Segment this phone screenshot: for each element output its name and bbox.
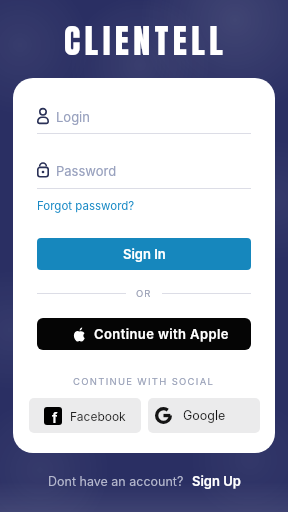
button[interactable]: Login [37,102,251,134]
button[interactable]: Password [37,156,251,188]
staticText: Sign In [123,246,166,262]
staticText: Google [183,408,226,423]
staticText: Dont have an account? [48,474,184,489]
button[interactable]: Sign Up [192,473,241,489]
staticText: Login [56,109,90,125]
staticText: Facebook [70,409,126,424]
staticText: Continue with Apple [94,326,229,342]
button[interactable]: Google [148,398,260,433]
button[interactable]: Continue with Apple [37,318,251,350]
staticText: Password [56,163,117,179]
staticText: CONTINUE WITH SOCIAL [73,376,215,387]
button[interactable]: f [29,398,141,433]
staticText: OR [136,288,152,299]
button[interactable]: Forgot password? [37,199,135,213]
staticText: CLIENTELL [64,15,228,66]
button[interactable]: Sign In [37,238,251,270]
staticText: f [52,409,58,425]
